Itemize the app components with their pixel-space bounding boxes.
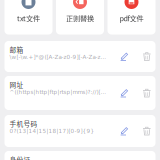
button[interactable]: 删除 [141,126,152,136]
staticText: \w[-\w.+]*@([A-Za-z0-9][-A-Za-z0-9]+\.)+… [9,54,109,60]
staticText: ^((https|http|ftp|rtsp|mms)?://)[^\s]+ [9,89,109,95]
staticText: txt文件 [17,13,40,23]
button[interactable]: 编辑 [118,88,130,98]
staticText: 网址 [9,80,23,89]
staticText: 身份证 [9,155,30,160]
button[interactable]: 编辑 [118,126,130,136]
staticText: 0?(13|14|15|18|17)[0-9]{9} [9,128,94,134]
button[interactable]: 编辑 [118,51,130,61]
button[interactable]: txt文件 [4,0,52,34]
staticText: 正则替换 [66,13,94,23]
staticText: 手机号码 [9,119,37,128]
button[interactable]: 删除 [141,51,152,61]
button[interactable]: 删除 [141,88,152,98]
staticText: pdf文件 [119,13,143,23]
staticText: 邮箱 [9,45,23,54]
button[interactable]: pdf文件 [107,0,155,34]
button[interactable]: 正则替换 [56,0,104,34]
